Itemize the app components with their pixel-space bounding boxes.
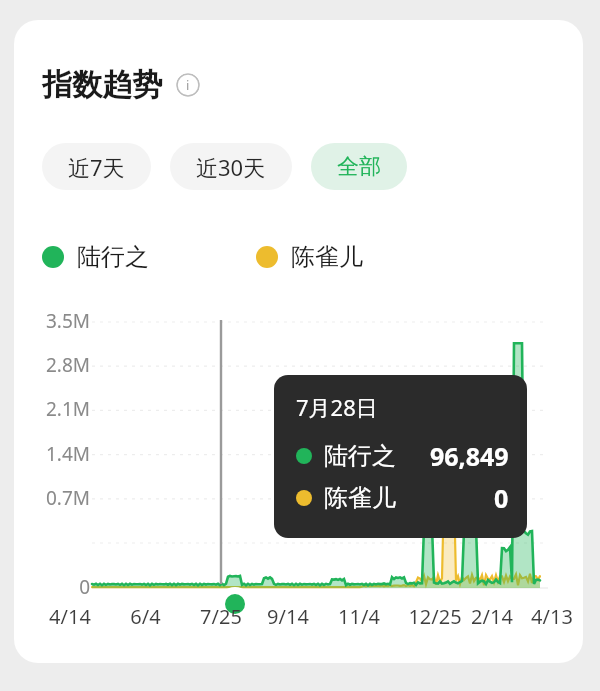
- staticText: 4/13: [531, 603, 573, 630]
- staticText: 0.7M: [45, 485, 90, 511]
- button[interactable]: 近30天: [170, 143, 292, 190]
- staticText: 2.1M: [45, 396, 90, 422]
- staticText: 陈雀儿: [324, 483, 396, 513]
- staticText: 96,849: [430, 439, 509, 473]
- staticText: 2.8M: [45, 352, 90, 378]
- staticText: 近30天: [196, 152, 266, 182]
- staticText: 近7天: [68, 152, 125, 182]
- staticText: 6/4: [130, 603, 161, 630]
- staticText: 9/14: [267, 603, 309, 630]
- staticText: 陈雀儿: [291, 242, 363, 272]
- staticText: 12/25: [408, 603, 462, 630]
- staticText: 1.4M: [45, 441, 90, 467]
- staticText: 0: [79, 574, 90, 600]
- staticText: 2/14: [471, 603, 513, 630]
- staticText: 0: [494, 481, 509, 515]
- staticText: 全部: [337, 153, 381, 181]
- staticText: 4/14: [49, 603, 91, 630]
- staticText: i: [186, 76, 190, 94]
- button[interactable]: 近7天: [42, 143, 151, 190]
- button[interactable]: 7月28日: [274, 375, 527, 538]
- staticText: 3.5M: [45, 308, 90, 334]
- staticText: 7月28日: [296, 392, 378, 422]
- button[interactable]: Info: [176, 73, 200, 97]
- button[interactable]: 陆行之: [42, 242, 149, 272]
- staticText: 陆行之: [324, 441, 396, 471]
- button[interactable]: 全部: [311, 143, 407, 190]
- staticText: 指数趋势: [42, 66, 162, 104]
- button[interactable]: 陈雀儿: [256, 242, 363, 272]
- staticText: 7/25: [200, 603, 242, 630]
- staticText: 11/4: [338, 603, 380, 630]
- staticText: 陆行之: [77, 242, 149, 272]
